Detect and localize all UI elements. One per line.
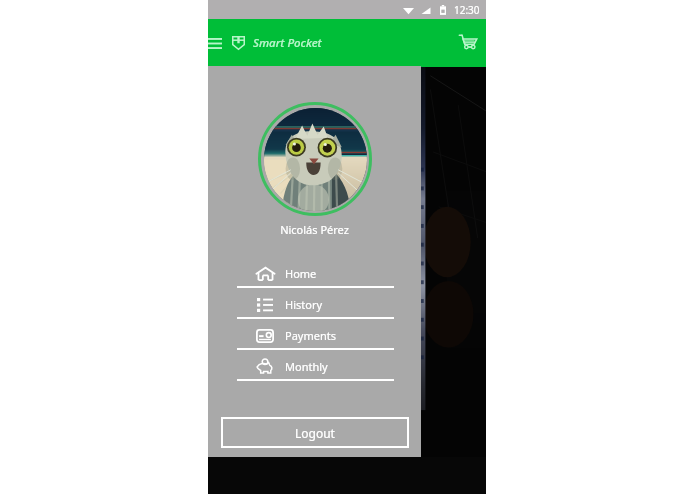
button[interactable]: Open navigation menu [208, 23, 222, 63]
button[interactable]: History [237, 288, 394, 319]
button[interactable]: Shopping cart [450, 20, 486, 67]
staticText: Payments [285, 328, 336, 343]
staticText: Logout [295, 425, 335, 441]
button[interactable]: Logout [221, 417, 409, 448]
staticText: History [285, 297, 323, 312]
button[interactable]: Home [237, 257, 394, 288]
staticText: 12:30 [454, 3, 480, 17]
staticText: Smart Pocket [253, 35, 322, 51]
staticText: Home [285, 266, 317, 281]
staticText: Nicolás Pérez [208, 222, 421, 237]
button[interactable]: Monthly [237, 350, 394, 381]
button[interactable]: Payments [237, 319, 394, 350]
staticText: Monthly [285, 359, 328, 374]
